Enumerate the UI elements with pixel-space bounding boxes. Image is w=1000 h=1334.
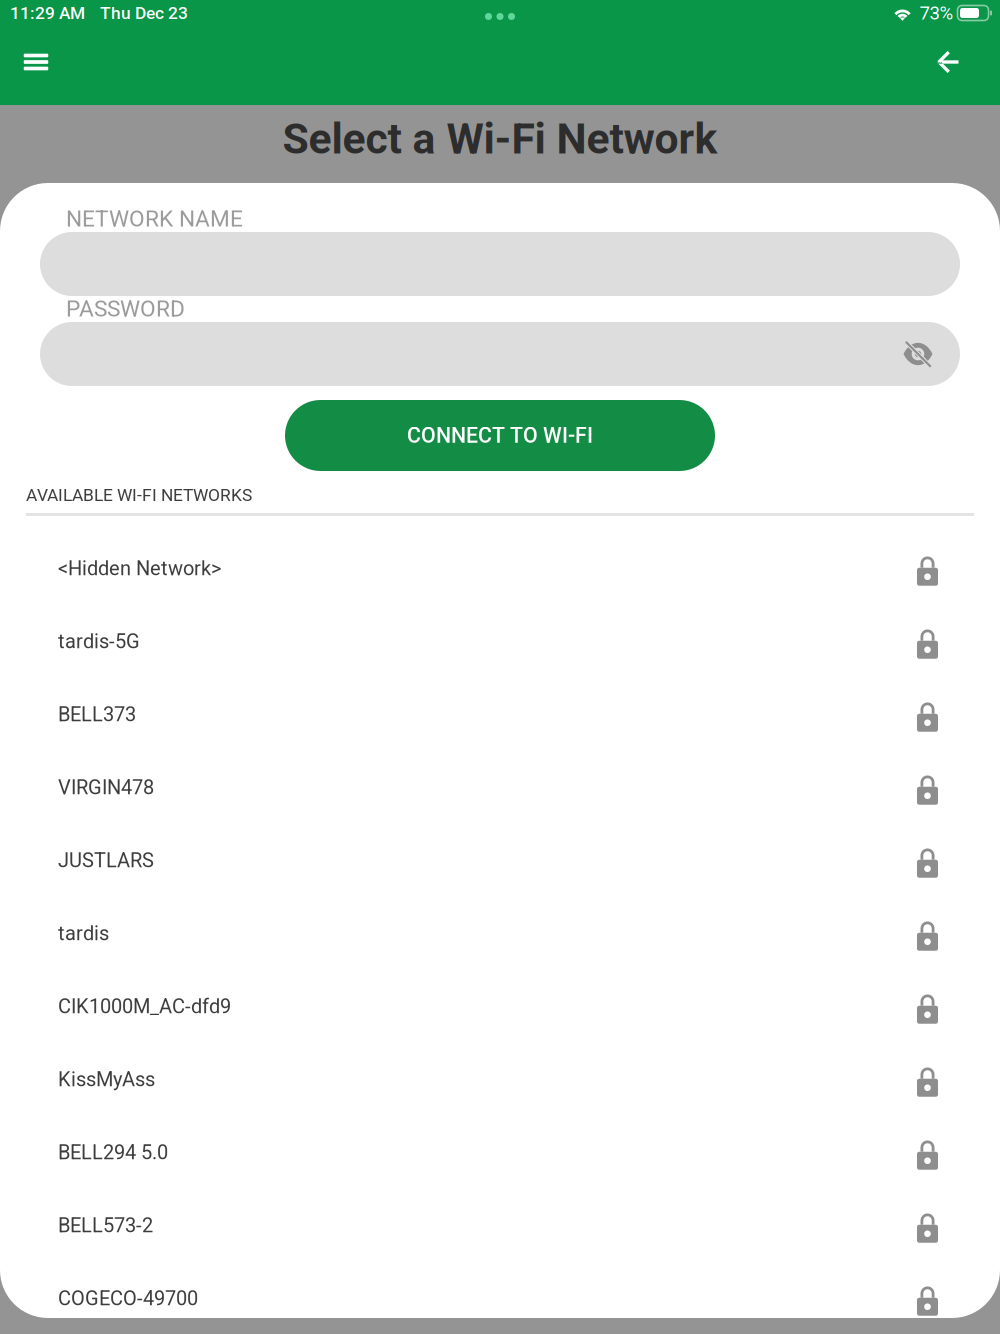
button[interactable]: <Hidden Network> bbox=[0, 532, 1000, 605]
staticText: COGECO-49700 bbox=[58, 1287, 198, 1310]
staticText: CONNECT TO WI-FI bbox=[407, 423, 593, 448]
staticText: tardis-5G bbox=[58, 630, 140, 653]
staticText: PASSWORD bbox=[66, 295, 185, 322]
staticText: CIK1000M_AC-dfd9 bbox=[58, 995, 231, 1018]
staticText: VIRGIN478 bbox=[58, 776, 154, 799]
staticText: KissMyAss bbox=[58, 1068, 155, 1091]
button[interactable]: tardis-5G bbox=[0, 605, 1000, 678]
staticText: BELL373 bbox=[58, 703, 136, 726]
staticText: Select a Wi-Fi Network bbox=[282, 114, 717, 164]
button[interactable]: KissMyAss bbox=[0, 1043, 1000, 1116]
button[interactable]: BELL373 bbox=[0, 678, 1000, 751]
staticText: BELL294 5.0 bbox=[58, 1141, 168, 1164]
staticText: tardis bbox=[58, 922, 109, 945]
button[interactable]: BELL573-2 bbox=[0, 1189, 1000, 1262]
staticText: JUSTLARS bbox=[58, 849, 154, 872]
staticText: BELL573-2 bbox=[58, 1214, 153, 1237]
staticText: 73% bbox=[919, 2, 953, 24]
button[interactable]: Back bbox=[912, 26, 984, 98]
button[interactable]: COGECO-49700 bbox=[0, 1262, 1000, 1334]
button[interactable]: tardis bbox=[0, 897, 1000, 970]
button[interactable]: VIRGIN478 bbox=[0, 751, 1000, 824]
staticText: AVAILABLE WI-FI NETWORKS bbox=[26, 485, 252, 505]
button[interactable]: CIK1000M_AC-dfd9 bbox=[0, 970, 1000, 1043]
button[interactable]: Show password bbox=[876, 322, 960, 386]
staticText: NETWORK NAME bbox=[66, 205, 243, 232]
button[interactable]: BELL294 5.0 bbox=[0, 1116, 1000, 1189]
button[interactable]: CONNECT TO WI-FI bbox=[285, 400, 715, 471]
staticText: <Hidden Network> bbox=[58, 557, 221, 580]
staticText: Thu Dec 23 bbox=[100, 3, 188, 23]
button[interactable]: Menu bbox=[0, 26, 72, 98]
button[interactable]: JUSTLARS bbox=[0, 824, 1000, 897]
staticText: 11:29 AM bbox=[10, 3, 85, 23]
